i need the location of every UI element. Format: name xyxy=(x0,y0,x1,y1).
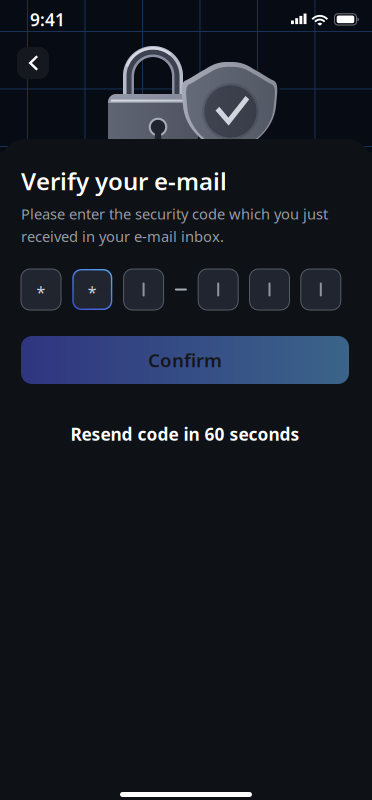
staticText: 9:41 xyxy=(30,8,65,31)
button[interactable]: Code digit xyxy=(198,269,238,310)
staticText: Please enter the security code which you… xyxy=(21,204,328,223)
button[interactable]: Code digit xyxy=(21,269,61,310)
staticText: * xyxy=(36,281,45,303)
button[interactable]: Code digit xyxy=(72,269,112,310)
staticText: Resend code in 60 seconds xyxy=(70,422,299,445)
button[interactable]: Back xyxy=(17,47,49,79)
staticText: * xyxy=(88,281,97,303)
button[interactable]: Code digit xyxy=(124,269,164,310)
button[interactable]: Resend code in 60 seconds xyxy=(21,424,349,444)
staticText: Confirm xyxy=(148,348,222,372)
button[interactable]: Code digit xyxy=(249,269,289,310)
button[interactable]: Code digit xyxy=(301,269,341,310)
staticText: received in your e-mail inbox. xyxy=(21,226,224,246)
button[interactable]: Confirm xyxy=(21,336,349,384)
staticText: Verify your e-mail xyxy=(21,165,227,197)
